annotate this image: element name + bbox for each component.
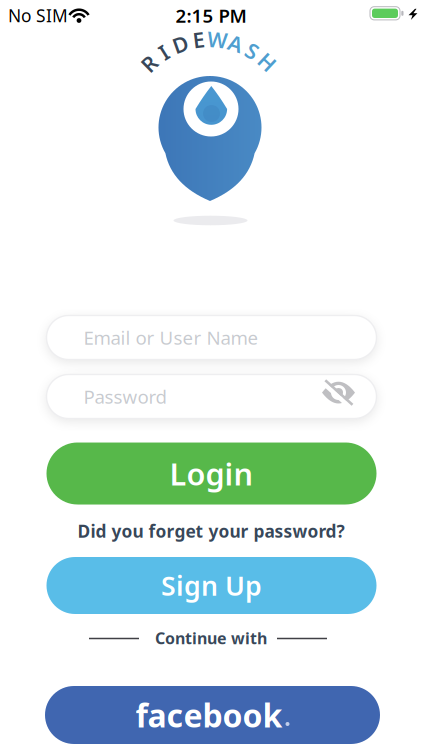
staticText: Email or User Name [83,325,258,350]
button[interactable]: Sign Up [46,557,376,614]
button[interactable]: Did you forget your password? [77,519,344,542]
button[interactable]: facebook [45,686,380,744]
button[interactable]: Show password [316,370,360,414]
staticText: W [207,25,227,53]
staticText: Login [169,453,253,494]
staticText: S [246,37,258,65]
button[interactable]: Login [46,442,376,504]
staticText: Password [83,384,166,409]
staticText: Did you forget your password? [77,519,344,542]
staticText: I [160,38,168,66]
staticText: Sign Up [161,568,262,603]
staticText: R [142,49,156,78]
staticText: Continue with [155,627,267,649]
staticText: facebook [135,694,282,736]
staticText: E [193,25,205,54]
staticText: 2:15 PM [175,3,246,28]
staticText: No SIM [8,4,68,27]
button[interactable]: Password [46,374,376,418]
staticText: D [172,30,188,58]
button[interactable]: Email or User Name [46,315,376,359]
staticText: A [228,29,242,57]
staticText: H [259,48,275,76]
